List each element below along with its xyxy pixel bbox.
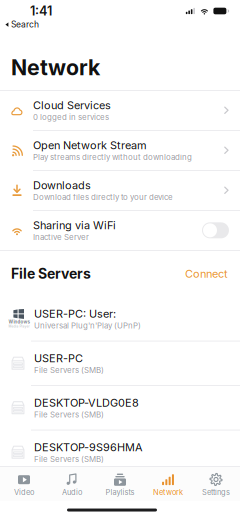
staticText: Playlists <box>105 488 134 497</box>
staticText: 1:41 <box>30 3 52 19</box>
staticText: Connect <box>185 267 228 280</box>
button[interactable]: Playlists <box>96 468 144 500</box>
staticText: File Servers (SMB) <box>34 365 104 375</box>
button[interactable]: USER-PC <box>0 341 240 386</box>
staticText: Inactive Server <box>33 232 89 242</box>
button[interactable]: Audio <box>48 468 96 500</box>
button[interactable]: Connect <box>185 267 228 280</box>
staticText: Download files directly to your device <box>33 192 173 202</box>
button[interactable]: DESKTOP-VLDG0E8 <box>0 386 240 430</box>
button[interactable]: Cloud Services <box>0 91 240 131</box>
staticText: 0 logged in services <box>33 112 109 122</box>
staticText: Cloud Services <box>33 99 111 112</box>
button[interactable]: Network <box>144 468 192 500</box>
staticText: DESKTOP-9S96HMA <box>34 441 143 454</box>
button[interactable]: Windows <box>0 297 240 341</box>
staticText: Settings <box>202 488 230 497</box>
staticText: Open Network Stream <box>33 139 147 152</box>
staticText: DESKTOP-VLDG0E8 <box>34 396 139 409</box>
staticText: Video <box>14 488 34 497</box>
staticText: Network <box>153 488 183 497</box>
staticText: File Servers (SMB) <box>34 410 104 419</box>
staticText: File Servers (SMB) <box>34 454 104 464</box>
staticText: File Servers <box>11 265 91 282</box>
button[interactable]: Open Network Stream <box>0 131 240 171</box>
staticText: USER-PC <box>34 352 83 365</box>
button[interactable]: Sharing via WiFi <box>202 222 229 238</box>
button[interactable]: Downloads <box>0 171 240 211</box>
button[interactable]: DESKTOP-9S96HMA <box>0 430 240 475</box>
button[interactable]: Settings <box>192 468 240 500</box>
staticText: Sharing via WiFi <box>33 219 116 232</box>
staticText: Media Player <box>8 324 29 328</box>
staticText: Network <box>11 55 100 80</box>
button[interactable]: Video <box>0 468 48 500</box>
staticText: Windows <box>8 319 29 324</box>
staticText: Search <box>11 19 39 30</box>
staticText: Audio <box>62 488 82 497</box>
staticText: USER-PC: User: <box>34 307 116 320</box>
staticText: Play streams directly without downloadin… <box>33 152 192 162</box>
staticText: Downloads <box>33 179 91 192</box>
staticText: Universal Plug'n'Play (UPnP) <box>34 321 141 330</box>
